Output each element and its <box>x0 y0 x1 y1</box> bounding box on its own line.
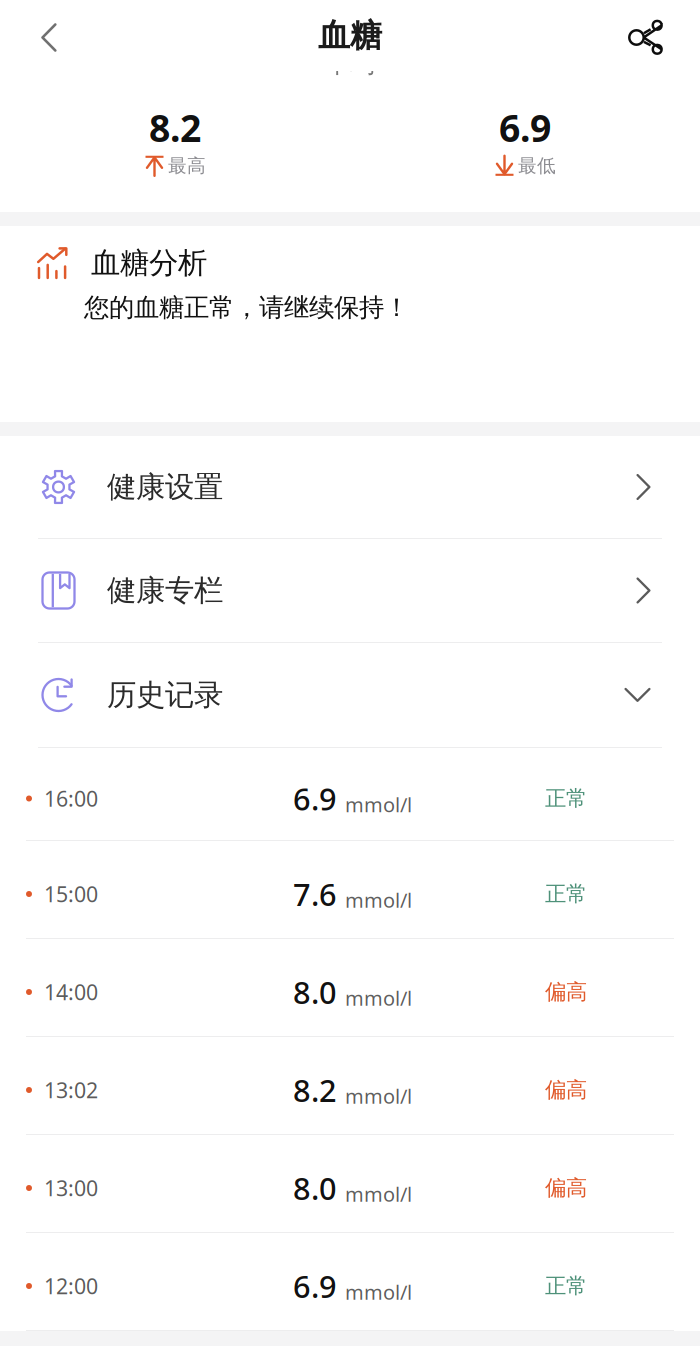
button[interactable]: 15:00 <box>0 841 700 939</box>
staticText: 7.6 <box>293 874 337 914</box>
staticText: mmol/l <box>345 791 412 818</box>
staticText: 最低 <box>518 154 556 177</box>
staticText: 正常 <box>545 1273 587 1299</box>
button[interactable]: 13:02 <box>0 1037 700 1135</box>
staticText: 正常 <box>545 881 587 907</box>
staticText: 健康设置 <box>107 469 223 505</box>
staticText: 8.0 <box>293 972 337 1012</box>
staticText: 6.9 <box>293 1266 337 1306</box>
button[interactable]: Back <box>21 9 77 65</box>
button[interactable]: 健康专栏 <box>0 539 700 643</box>
staticText: 健康专栏 <box>107 572 223 608</box>
button[interactable]: 13:00 <box>0 1135 700 1233</box>
staticText: mmol/l <box>345 1279 412 1305</box>
staticText: 13:00 <box>44 1174 98 1202</box>
staticText: 8.2 <box>293 1070 337 1110</box>
staticText: 最高 <box>168 154 206 177</box>
staticText: 15:00 <box>44 880 98 908</box>
button[interactable]: 16:00 <box>0 748 700 841</box>
staticText: 血糖 <box>318 16 382 55</box>
staticText: 偏高 <box>545 979 587 1005</box>
staticText: 平均 <box>325 48 375 79</box>
staticText: 12:00 <box>44 1272 98 1300</box>
staticText: 您的血糖正常，请继续保持！ <box>84 292 409 323</box>
staticText: 8.2 <box>149 103 201 152</box>
staticText: 13:02 <box>44 1076 98 1104</box>
staticText: 6.9 <box>293 778 337 819</box>
staticText: mmol/l <box>345 1083 412 1109</box>
button[interactable]: 历史记录 <box>0 643 700 748</box>
staticText: 历史记录 <box>107 677 223 713</box>
staticText: mmol/l <box>345 887 412 913</box>
staticText: 偏高 <box>545 1175 587 1201</box>
staticText: 偏高 <box>545 1077 587 1103</box>
staticText: 正常 <box>545 785 587 812</box>
staticText: 8.0 <box>293 1168 337 1208</box>
staticText: 14:00 <box>44 978 98 1006</box>
staticText: mmol/l <box>345 985 412 1011</box>
staticText: mmol/l <box>345 1181 412 1207</box>
button[interactable]: Share <box>616 9 672 65</box>
button[interactable]: 健康设置 <box>0 436 700 539</box>
staticText: 血糖分析 <box>91 245 207 281</box>
button[interactable]: 12:00 <box>0 1233 700 1331</box>
button[interactable]: 14:00 <box>0 939 700 1037</box>
staticText: 16:00 <box>44 784 98 813</box>
staticText: 6.9 <box>499 103 551 152</box>
